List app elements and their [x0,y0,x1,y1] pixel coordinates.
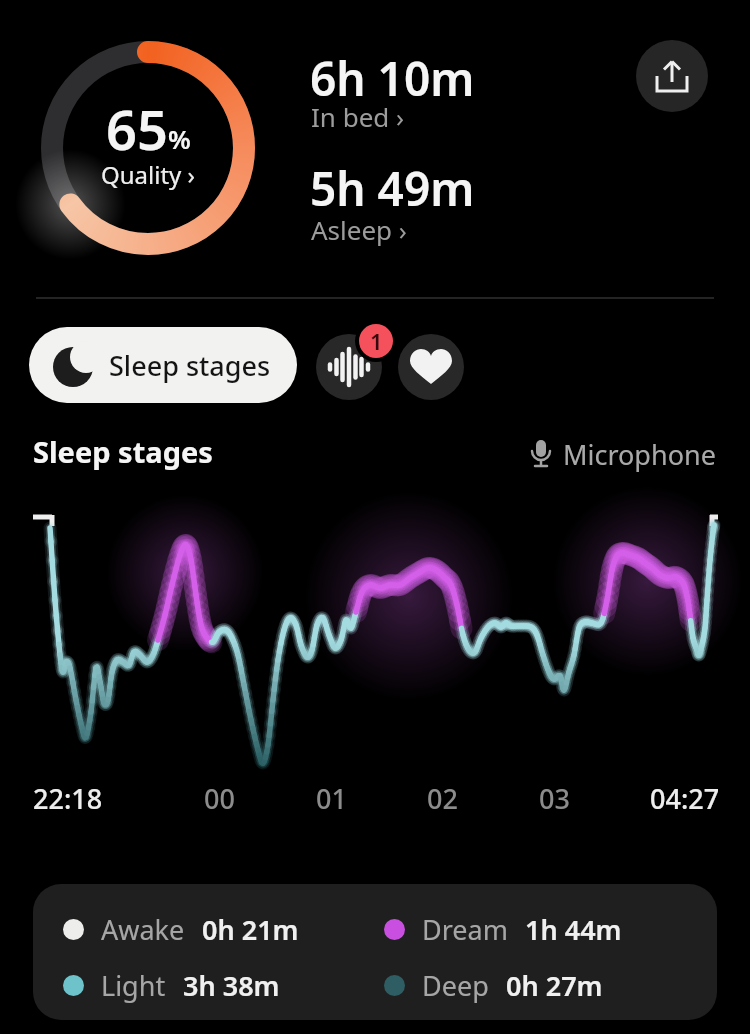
staticText: 6h 10m [310,47,475,110]
staticText: Awake [101,911,185,948]
button[interactable] [636,40,708,112]
staticText: Microphone [563,436,716,473]
button[interactable]: 65 [41,92,255,212]
staticText: 22:18 [33,780,103,817]
staticText: 03 [539,780,570,817]
staticText: 04:27 [650,780,720,817]
button[interactable] [398,334,464,400]
staticText: 5h 49m [310,157,475,220]
staticText: Dream [422,911,508,948]
staticText: 02 [427,780,458,817]
staticText: Sleep stages [33,432,213,471]
staticText: 65 [106,92,168,166]
staticText: Light [101,967,166,1004]
staticText: 3h 38m [183,967,280,1004]
staticText: 1h 44m [525,911,622,948]
button[interactable]: Asleep › [311,212,407,247]
staticText: 01 [316,780,347,817]
button[interactable]: Microphone [527,436,716,473]
staticText: 00 [204,780,235,817]
staticText: 0h 27m [506,967,603,1004]
staticText: Sleep stages [109,347,271,384]
button[interactable]: Sleep stages [29,327,297,403]
staticText: % [168,121,191,156]
staticText: 0h 21m [202,911,299,948]
button[interactable]: In bed › [311,99,405,134]
button[interactable] [316,334,382,400]
staticText: Deep [422,967,489,1004]
staticText: Quality › [101,158,196,191]
staticText: 1 [370,326,383,356]
